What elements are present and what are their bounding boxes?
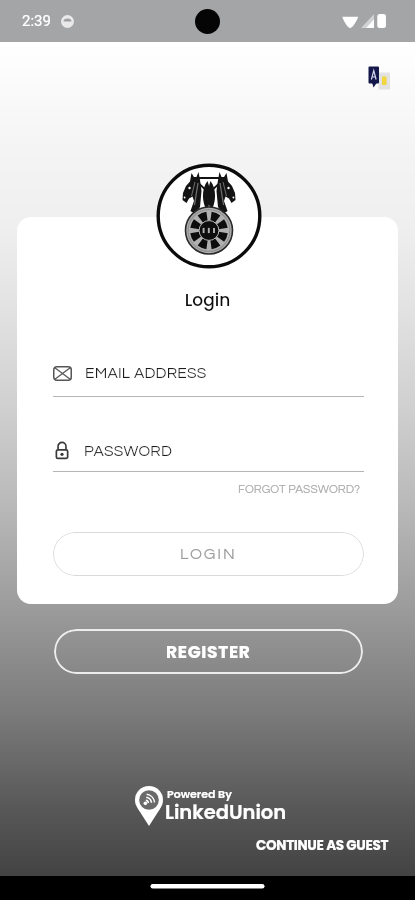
staticText: REGISTER <box>166 640 251 664</box>
staticText: 2:39 <box>22 12 51 30</box>
button[interactable]: Change language <box>359 58 399 98</box>
staticText: FORGOT PASSWORD? <box>238 483 361 495</box>
staticText: LinkedUnion <box>165 799 287 826</box>
button[interactable]: PASSWORD <box>53 431 364 471</box>
button[interactable]: FORGOT PASSWORD? <box>212 477 361 501</box>
button[interactable]: EMAIL ADDRESS <box>53 356 364 396</box>
staticText: Login <box>17 288 398 312</box>
staticText: EMAIL ADDRESS <box>85 365 207 381</box>
staticText: Powered By <box>167 786 232 801</box>
button[interactable]: CONTINUE AS GUEST <box>250 832 395 858</box>
button[interactable]: LOGIN <box>53 532 364 576</box>
button[interactable]: REGISTER <box>54 629 363 674</box>
staticText: CONTINUE AS GUEST <box>256 836 389 855</box>
staticText: LOGIN <box>180 546 237 562</box>
staticText: PASSWORD <box>84 443 173 459</box>
